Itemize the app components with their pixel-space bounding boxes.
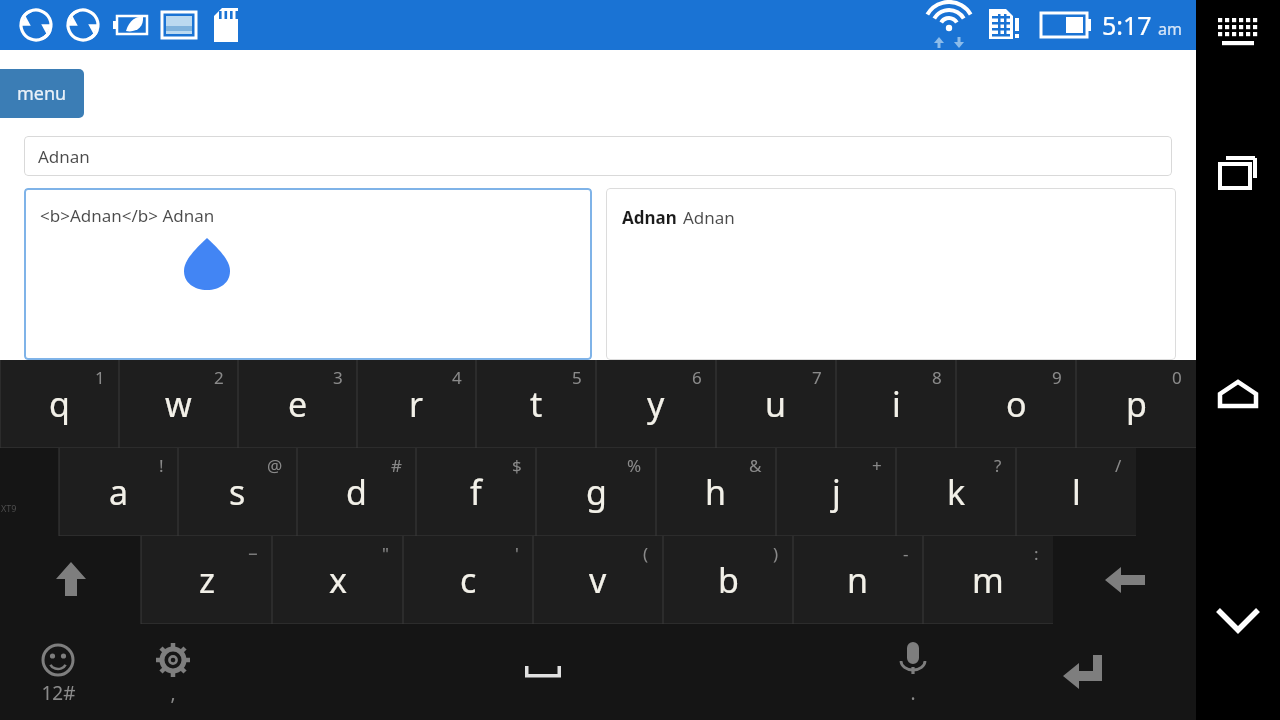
button[interactable]: h xyxy=(656,448,776,536)
staticText: r xyxy=(409,381,424,427)
staticText: ( xyxy=(643,542,649,565)
button[interactable]: Backspace xyxy=(1053,536,1196,624)
staticText: 2 xyxy=(214,366,224,389)
button[interactable]: Space xyxy=(229,624,856,720)
staticText: Adnan xyxy=(622,206,677,229)
button[interactable]: v xyxy=(533,536,663,624)
staticText: 9 xyxy=(1052,366,1062,389)
staticText: 6 xyxy=(692,366,702,389)
staticText: c xyxy=(460,557,477,603)
staticText: ? xyxy=(994,454,1002,477)
button[interactable]: Hide keyboard xyxy=(1196,0,1280,60)
staticText: : xyxy=(1034,542,1039,565)
button[interactable]: c xyxy=(403,536,533,624)
button[interactable]: w xyxy=(119,360,238,448)
button[interactable]: d xyxy=(297,448,416,536)
staticText: 4 xyxy=(452,366,462,389)
button[interactable]: 12# xyxy=(0,624,116,720)
staticText: 12# xyxy=(41,680,76,706)
button[interactable]: x xyxy=(272,536,403,624)
staticText: t xyxy=(530,381,543,427)
staticText: 1 xyxy=(95,366,105,389)
button[interactable]: Shift xyxy=(0,536,141,624)
staticText: Adnan xyxy=(38,145,90,168)
button[interactable]: n xyxy=(793,536,923,624)
staticText: # xyxy=(391,454,402,477)
staticText: <b>Adnan</b> Adnan xyxy=(40,204,215,227)
button[interactable]: i xyxy=(836,360,956,448)
staticText: / xyxy=(1115,454,1122,477)
staticText: k xyxy=(947,469,966,515)
button[interactable]: . xyxy=(856,624,969,720)
button[interactable]: b xyxy=(663,536,793,624)
button[interactable]: s xyxy=(178,448,297,536)
other: Emoji and symbols xyxy=(35,637,81,683)
staticText: " xyxy=(382,542,389,565)
staticText: + xyxy=(872,454,882,477)
button[interactable] xyxy=(0,448,59,536)
button[interactable]: j xyxy=(776,448,896,536)
other: Backspace xyxy=(1102,557,1148,603)
staticText: l xyxy=(1072,469,1081,515)
staticText: h xyxy=(705,469,727,515)
staticText: e xyxy=(288,381,308,427)
button[interactable]: Adnan xyxy=(24,136,1172,176)
staticText: - xyxy=(903,542,909,565)
staticText: d xyxy=(346,469,367,515)
staticText: ) xyxy=(773,542,779,565)
other: Keyboard settings xyxy=(150,637,196,683)
button[interactable]: k xyxy=(896,448,1016,536)
staticText: j xyxy=(832,469,841,515)
staticText: o xyxy=(1006,381,1027,427)
button[interactable]: o xyxy=(956,360,1076,448)
other: Voice input xyxy=(890,637,936,683)
staticText: n xyxy=(847,557,869,603)
staticText: b xyxy=(718,557,739,603)
button[interactable]: l xyxy=(1016,448,1136,536)
button[interactable]: e xyxy=(238,360,357,448)
button[interactable]: Home xyxy=(1196,354,1280,438)
staticText: % xyxy=(627,454,642,477)
staticText: i xyxy=(892,381,901,427)
staticText: z xyxy=(199,557,215,603)
staticText: g xyxy=(586,469,607,515)
staticText: a xyxy=(109,469,129,515)
staticText: w xyxy=(165,381,192,427)
staticText: 7 xyxy=(812,366,822,389)
other: Shift xyxy=(48,557,94,603)
staticText: 3 xyxy=(333,366,343,389)
button[interactable]: u xyxy=(716,360,836,448)
staticText: x xyxy=(329,557,347,603)
button[interactable]: Adnan xyxy=(606,188,1176,360)
button[interactable]: y xyxy=(596,360,716,448)
button[interactable]: q xyxy=(0,360,119,448)
button[interactable]: <b>Adnan</b> Adnan xyxy=(24,188,592,360)
button[interactable]: g xyxy=(536,448,656,536)
button[interactable]: f xyxy=(416,448,536,536)
staticText: . xyxy=(910,680,916,706)
button[interactable]: Recents xyxy=(1196,130,1280,214)
button[interactable]: r xyxy=(357,360,476,448)
button[interactable]: z xyxy=(141,536,272,624)
staticText: − xyxy=(248,542,258,565)
button[interactable]: a xyxy=(59,448,178,536)
staticText: p xyxy=(1126,381,1147,427)
button[interactable]: , xyxy=(116,624,229,720)
staticText: am xyxy=(1158,18,1182,40)
staticText: 8 xyxy=(932,366,942,389)
other: Space xyxy=(523,652,563,692)
staticText: s xyxy=(229,469,246,515)
staticText: $ xyxy=(512,454,522,477)
button[interactable]: Enter xyxy=(969,624,1196,720)
staticText: m xyxy=(972,557,1004,603)
staticText: 5 xyxy=(572,366,582,389)
button[interactable]: t xyxy=(476,360,596,448)
button[interactable]: m xyxy=(923,536,1053,624)
staticText: f xyxy=(470,469,482,515)
staticText: u xyxy=(765,381,787,427)
button[interactable]: Back xyxy=(1196,578,1280,662)
staticText: 0 xyxy=(1172,366,1182,389)
button[interactable]: menu xyxy=(0,69,84,118)
button[interactable]: p xyxy=(1076,360,1196,448)
